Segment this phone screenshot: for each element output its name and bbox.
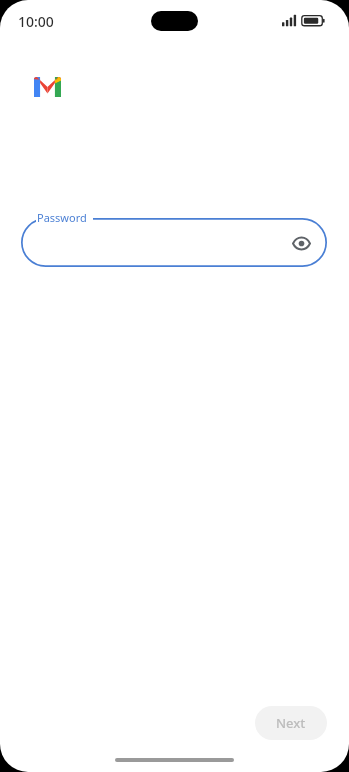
staticText: 10:00: [18, 12, 54, 31]
other: Gmail: [34, 77, 61, 97]
staticText: Password: [37, 210, 87, 225]
staticText: Next: [276, 714, 306, 732]
button[interactable]: Show password: [285, 227, 317, 259]
button[interactable]: Next: [255, 706, 327, 740]
button[interactable]: Show password: [21, 218, 327, 267]
